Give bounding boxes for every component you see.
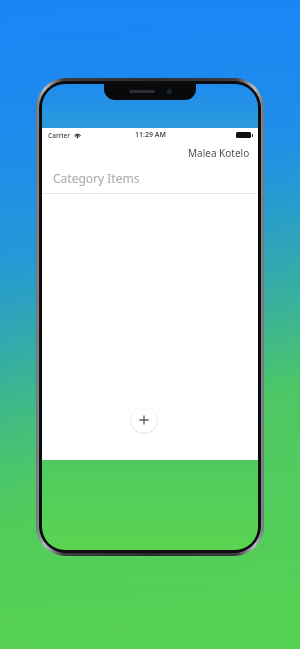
button[interactable]: Category Items (42, 164, 258, 192)
staticText: Category Items (53, 170, 140, 186)
staticText: 11:29 AM (135, 130, 166, 140)
staticText: Carrier (48, 131, 71, 140)
button[interactable]: Add item (130, 406, 158, 434)
button[interactable]: Malea Kotelo (188, 146, 250, 160)
